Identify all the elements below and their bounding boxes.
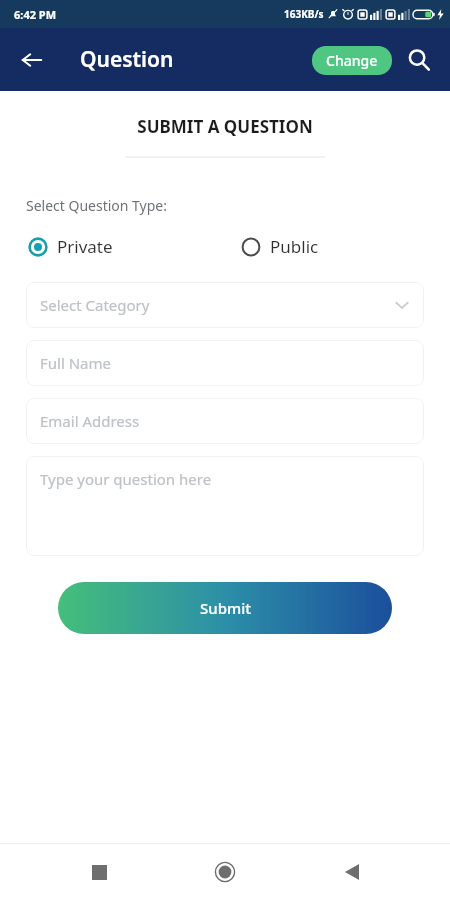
button[interactable]: Select Category xyxy=(26,282,424,328)
button[interactable]: Email Address xyxy=(26,398,424,444)
button[interactable]: Type your question here xyxy=(26,456,424,556)
staticText: Public xyxy=(270,235,319,258)
staticText: Type your question here xyxy=(40,469,212,489)
button[interactable]: Submit xyxy=(58,582,392,634)
staticText: Change xyxy=(326,51,378,70)
button[interactable]: Recent apps xyxy=(71,844,127,900)
button[interactable]: Back xyxy=(10,38,54,82)
button[interactable]: Public xyxy=(239,233,321,260)
staticText: 6:42 PM xyxy=(14,7,57,22)
staticText: Full Name xyxy=(40,353,111,373)
button[interactable]: Change xyxy=(312,46,392,75)
other: Expand category list xyxy=(392,295,412,315)
staticText: Question xyxy=(80,45,174,74)
button[interactable]: Private xyxy=(26,233,115,260)
staticText: Private xyxy=(57,235,113,258)
staticText: SUBMIT A QUESTION xyxy=(137,115,313,138)
button[interactable]: Back xyxy=(324,844,380,900)
button[interactable]: Home xyxy=(197,844,253,900)
staticText: Select Category xyxy=(40,295,150,315)
staticText: Select Question Type: xyxy=(26,196,168,215)
button[interactable]: Search xyxy=(402,43,436,77)
staticText: Email Address xyxy=(40,411,140,431)
staticText: Submit xyxy=(200,598,251,618)
button[interactable]: Full Name xyxy=(26,340,424,386)
staticText: 163KB/s xyxy=(284,7,324,21)
